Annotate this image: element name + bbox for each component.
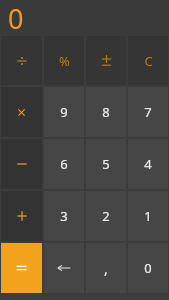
button[interactable]: 4 bbox=[128, 139, 168, 189]
button[interactable]: Backspace bbox=[44, 243, 84, 293]
button[interactable]: Divide bbox=[1, 36, 42, 85]
button[interactable]: Plus bbox=[1, 191, 42, 241]
button[interactable]: Decimal separator bbox=[86, 243, 126, 293]
button[interactable]: 3 bbox=[44, 191, 84, 241]
staticText: 7 bbox=[144, 103, 152, 121]
staticText: 3 bbox=[60, 207, 68, 225]
staticText: 5 bbox=[102, 155, 110, 173]
staticText: 8 bbox=[102, 103, 110, 121]
button[interactable]: 6 bbox=[44, 139, 84, 189]
staticText: 0 bbox=[144, 259, 152, 277]
button[interactable]: 0 bbox=[128, 243, 168, 293]
button[interactable]: Clear bbox=[128, 36, 168, 85]
button[interactable]: Equals bbox=[1, 243, 42, 293]
button[interactable]: Multiply bbox=[1, 87, 42, 137]
staticText: 1 bbox=[144, 207, 152, 225]
button[interactable]: 1 bbox=[128, 191, 168, 241]
button[interactable]: Plus minus bbox=[86, 36, 126, 85]
button[interactable]: 9 bbox=[44, 87, 84, 137]
button[interactable]: 8 bbox=[86, 87, 126, 137]
staticText: , bbox=[104, 259, 108, 278]
button[interactable]: 5 bbox=[86, 139, 126, 189]
staticText: C bbox=[144, 52, 153, 70]
button[interactable]: Minus bbox=[1, 139, 42, 189]
staticText: 4 bbox=[144, 155, 152, 173]
staticText: % bbox=[59, 52, 70, 70]
staticText: 9 bbox=[60, 103, 68, 121]
staticText: 6 bbox=[60, 155, 68, 173]
button[interactable]: 7 bbox=[128, 87, 168, 137]
button[interactable]: 2 bbox=[86, 191, 126, 241]
staticText: 2 bbox=[102, 207, 110, 225]
button[interactable]: Percent bbox=[44, 36, 84, 85]
staticText: 0 bbox=[8, 0, 24, 35]
